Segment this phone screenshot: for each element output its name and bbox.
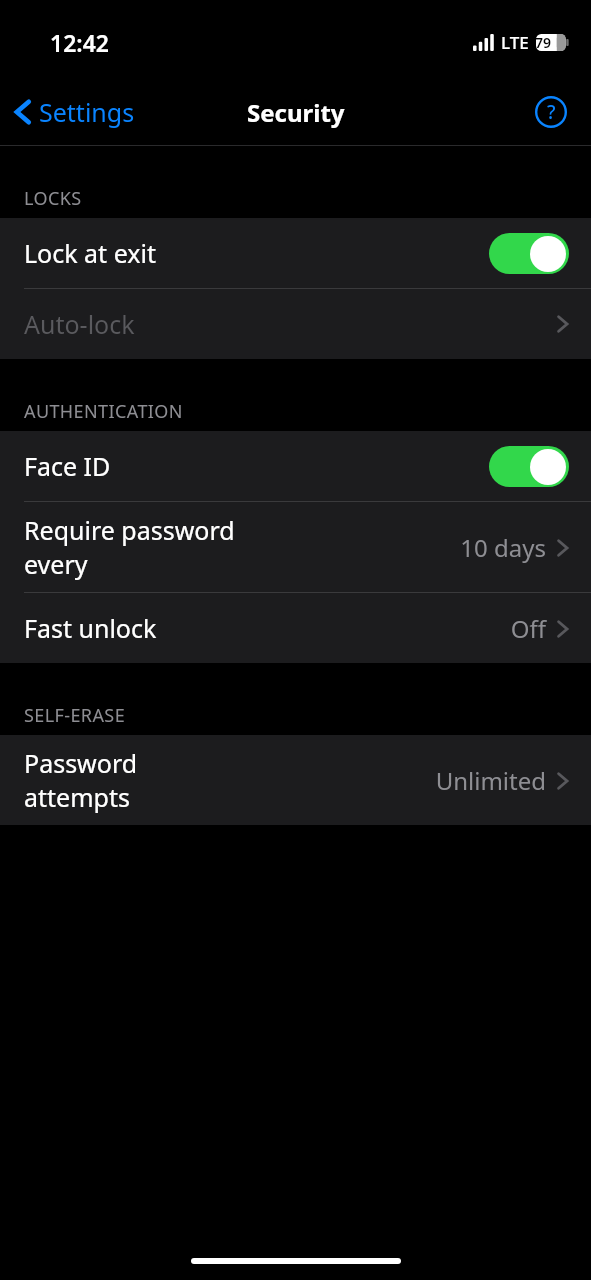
staticText: SELF-ERASE bbox=[24, 703, 126, 728]
staticText: Security bbox=[247, 96, 345, 129]
staticText: Face ID bbox=[24, 449, 489, 483]
staticText: Password bbox=[24, 746, 138, 780]
button[interactable]: Auto-lock bbox=[0, 289, 591, 359]
staticText: Settings bbox=[39, 95, 135, 129]
staticText: Lock at exit bbox=[24, 236, 489, 270]
staticText: 79 bbox=[535, 33, 552, 52]
staticText: Auto-lock bbox=[24, 307, 556, 341]
staticText: every bbox=[24, 547, 88, 581]
button[interactable]: Toggle bbox=[489, 446, 569, 487]
button[interactable]: Fast unlock bbox=[0, 593, 591, 663]
staticText: LOCKS bbox=[24, 186, 82, 211]
staticText: 10 days bbox=[460, 531, 546, 564]
staticText: LTE bbox=[501, 31, 529, 54]
staticText: ? bbox=[547, 99, 556, 125]
button[interactable]: Toggle bbox=[489, 233, 569, 274]
button[interactable]: Settings bbox=[0, 89, 145, 135]
staticText: Require password bbox=[24, 513, 235, 547]
staticText: 12:42 bbox=[50, 27, 109, 58]
staticText: Fast unlock bbox=[24, 611, 510, 645]
staticText: AUTHENTICATION bbox=[24, 399, 183, 424]
button[interactable]: Help bbox=[529, 90, 573, 134]
button[interactable]: Require password bbox=[0, 502, 591, 592]
button[interactable]: Password bbox=[0, 735, 591, 825]
staticText: attempts bbox=[24, 780, 130, 814]
button[interactable]: Lock at exit bbox=[0, 218, 591, 288]
button[interactable]: Face ID bbox=[0, 431, 591, 501]
staticText: Unlimited bbox=[435, 764, 546, 797]
staticText: Off bbox=[510, 612, 546, 645]
